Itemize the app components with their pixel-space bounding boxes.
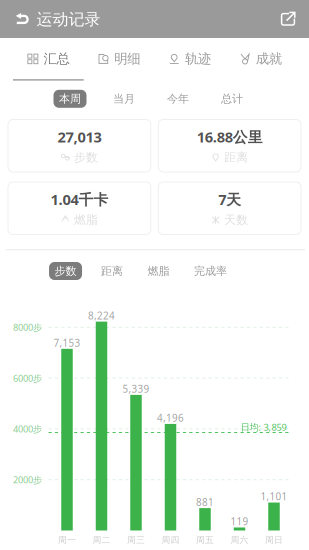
staticText: 轨迹 (185, 50, 211, 67)
staticText: 运动记录 (36, 9, 100, 30)
button[interactable]: 本周 (53, 90, 86, 108)
staticText: 1.04千卡 (50, 189, 108, 209)
staticText: 16.88公里 (197, 127, 263, 147)
button[interactable]: 燃脂 (142, 262, 175, 280)
staticText: 燃脂 (74, 212, 98, 227)
staticText: 步数 (55, 264, 77, 278)
staticText: 7,153 (53, 336, 80, 349)
staticText: 1,101 (260, 490, 287, 503)
staticText: 周一 (58, 534, 76, 546)
staticText: 步数 (74, 150, 98, 165)
staticText: 7天 (218, 189, 241, 209)
staticText: 4000步 (13, 423, 42, 435)
staticText: 4,196 (157, 411, 184, 425)
staticText: 2000步 (13, 473, 42, 486)
staticText: 完成率 (194, 264, 227, 278)
button[interactable]: 明细 (84, 38, 155, 80)
staticText: 天数 (224, 212, 248, 227)
staticText: 今年 (167, 92, 189, 106)
staticText: 燃脂 (148, 264, 170, 278)
button[interactable]: 步数 (49, 262, 82, 280)
staticText: 距离 (224, 150, 248, 165)
staticText: 本周 (59, 92, 81, 106)
button[interactable]: 轨迹 (154, 38, 225, 80)
button[interactable]: 汇总 (13, 38, 84, 80)
staticText: 5,339 (122, 382, 149, 396)
staticText: 8,224 (88, 309, 115, 322)
button[interactable]: 成就 (225, 38, 296, 80)
staticText: 周四 (161, 534, 179, 546)
staticText: 周五 (196, 534, 214, 546)
button[interactable]: Share (269, 0, 307, 38)
staticText: 汇总 (43, 50, 69, 67)
staticText: 日均: 3,859 (240, 421, 286, 433)
button[interactable]: 距离 (96, 262, 129, 280)
staticText: 总计 (221, 92, 243, 106)
staticText: 明细 (114, 50, 140, 67)
staticText: 27,013 (57, 127, 101, 147)
button[interactable]: 今年 (161, 90, 194, 108)
staticText: 周六 (230, 534, 248, 546)
staticText: 周日 (265, 534, 283, 546)
staticText: 119 (230, 515, 248, 528)
staticText: 881 (196, 495, 214, 509)
button[interactable]: 总计 (215, 90, 248, 108)
staticText: 周三 (127, 534, 145, 546)
button[interactable]: 当月 (107, 90, 140, 108)
staticText: 当月 (113, 92, 135, 106)
staticText: 周二 (92, 534, 110, 546)
staticText: 6000步 (13, 372, 42, 384)
staticText: 距离 (101, 264, 123, 278)
button[interactable]: 完成率 (189, 262, 233, 280)
button[interactable]: 运动记录 (7, 0, 108, 38)
staticText: 成就 (256, 50, 282, 67)
staticText: 8000步 (13, 321, 42, 333)
